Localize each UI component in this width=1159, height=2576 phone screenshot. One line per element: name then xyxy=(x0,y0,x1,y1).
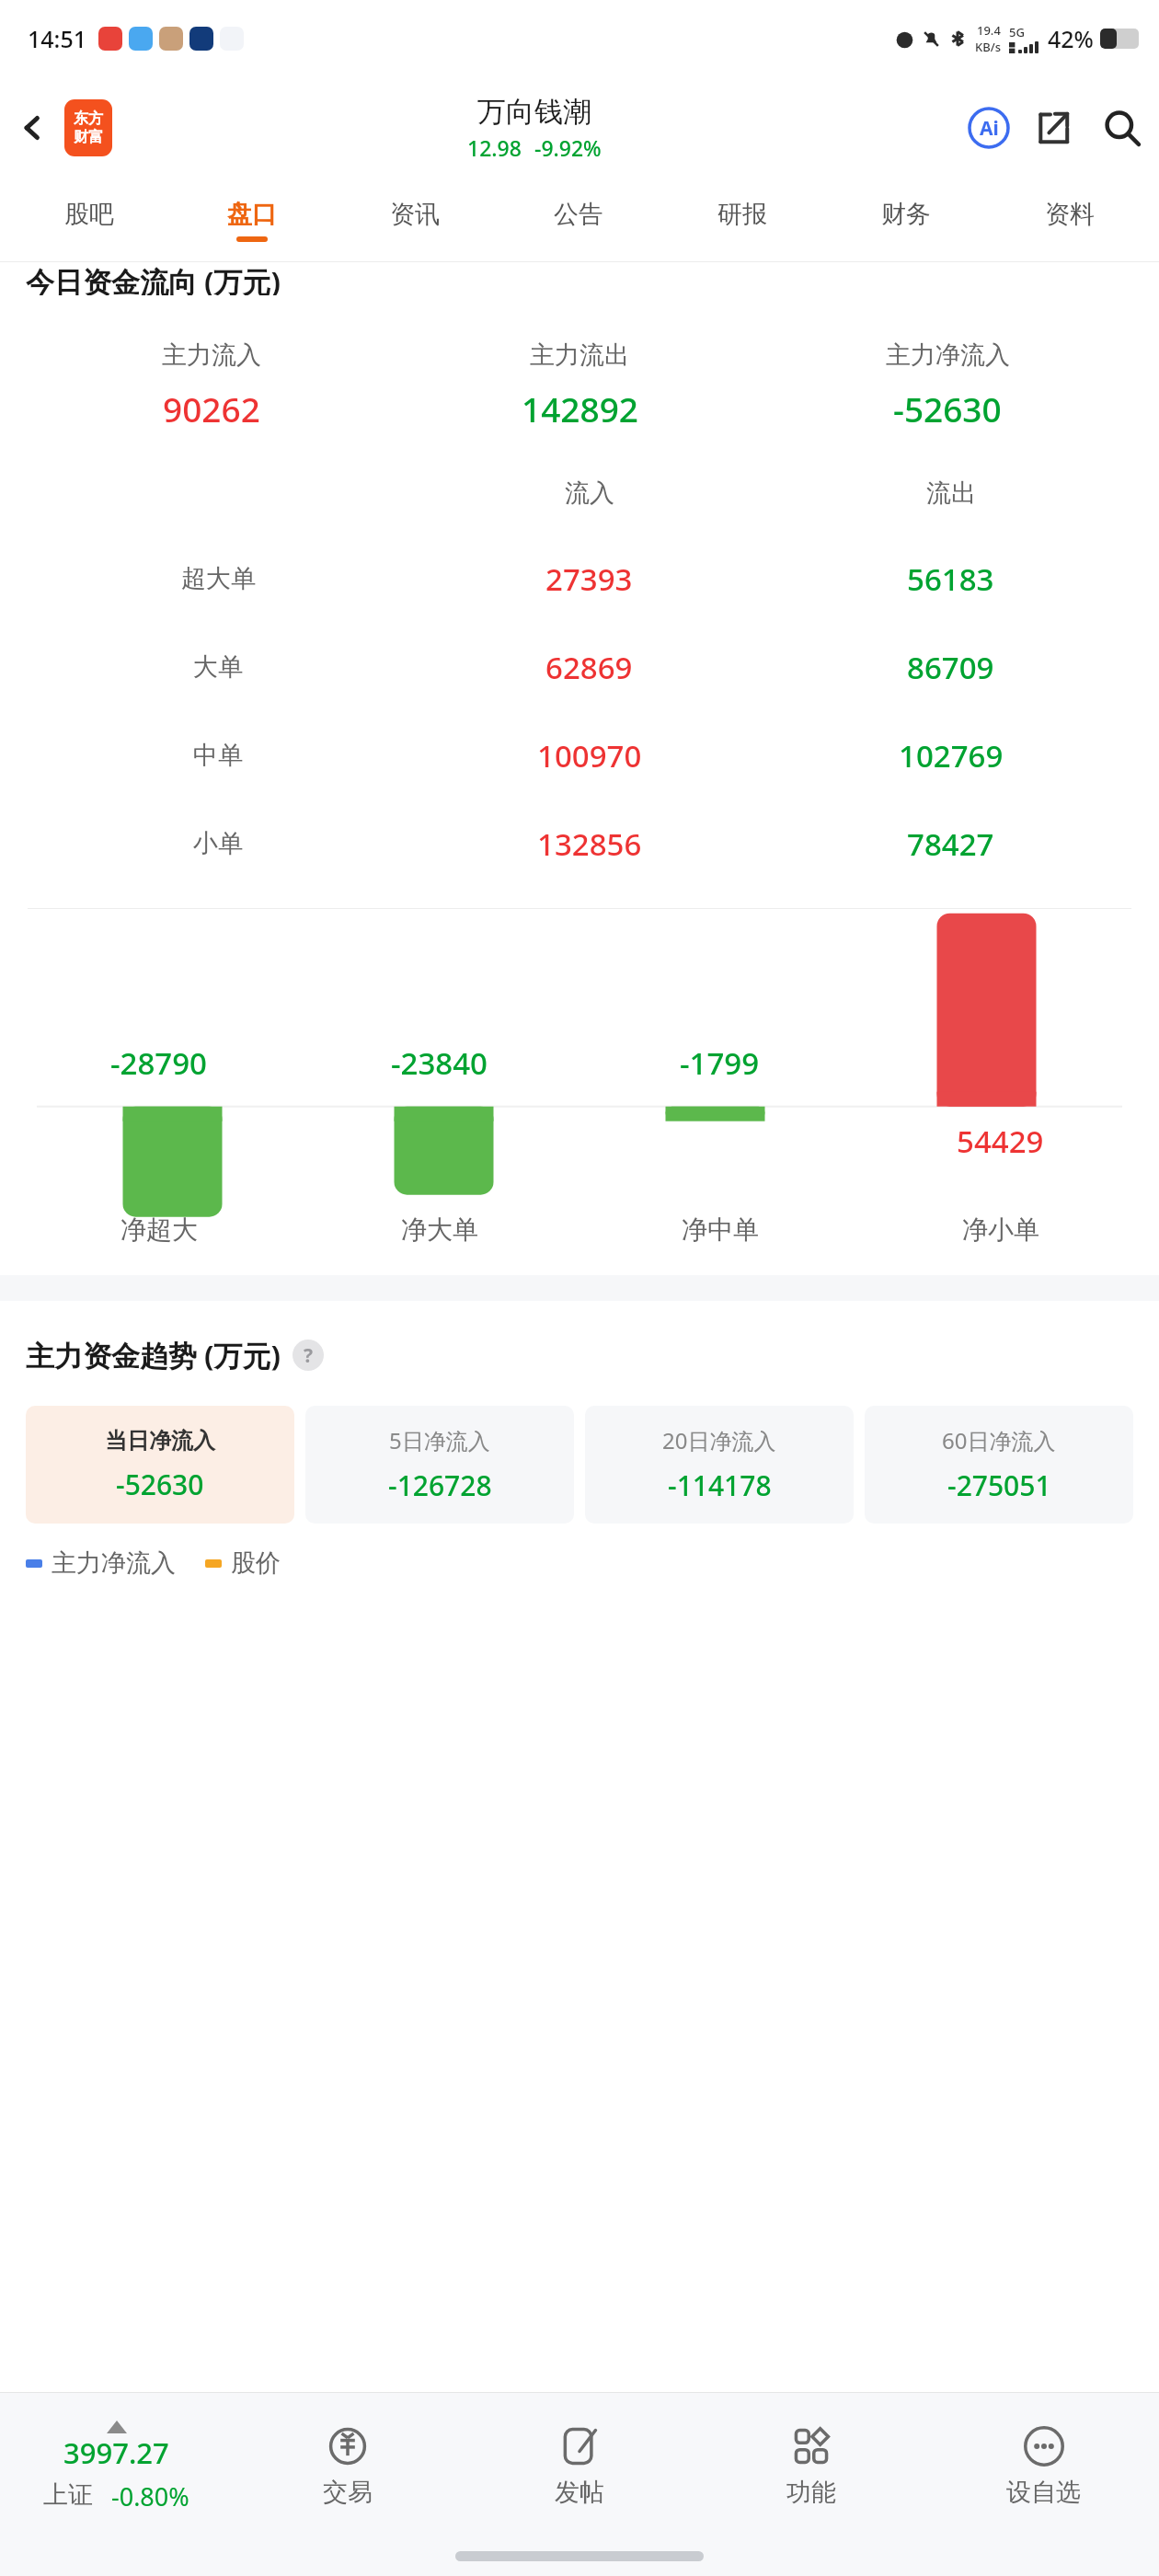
staticText: 研报 xyxy=(717,199,767,230)
button[interactable]: East Money xyxy=(64,99,112,156)
staticText: 超大单 xyxy=(181,563,256,594)
staticText: 27393 xyxy=(545,558,633,600)
staticText: 54429 xyxy=(957,1121,1044,1162)
button[interactable]: 超大单 xyxy=(28,535,1131,623)
staticText: 设自选 xyxy=(1006,2477,1081,2508)
staticText: 主力流入 xyxy=(162,339,261,371)
button[interactable]: 公告 xyxy=(497,178,660,261)
staticText: 流入 xyxy=(565,477,614,509)
staticText: -52630 xyxy=(893,385,1002,431)
staticText: 102769 xyxy=(899,735,1004,776)
button[interactable]: Help xyxy=(293,1340,324,1371)
staticText: -126728 xyxy=(388,1466,492,1504)
staticText: 42% xyxy=(1048,23,1094,54)
staticText: 主力资金趋势 (万元) xyxy=(26,1336,281,1374)
button[interactable]: 5日净流入 xyxy=(305,1406,574,1524)
staticText: 主力流出 xyxy=(530,339,629,371)
staticText: 大单 xyxy=(193,651,243,683)
staticText: 142892 xyxy=(522,385,638,431)
staticText: 3997.27 xyxy=(63,2433,169,2472)
staticText: 功能 xyxy=(786,2477,836,2508)
staticText: -52630 xyxy=(116,1466,204,1503)
button[interactable]: Share xyxy=(1021,96,1085,160)
staticText: 净小单 xyxy=(962,1213,1039,1246)
staticText: -1799 xyxy=(680,1042,760,1084)
button[interactable]: 设自选 xyxy=(927,2393,1159,2540)
staticText: 净大单 xyxy=(401,1213,478,1246)
button[interactable]: Back xyxy=(0,77,64,178)
staticText: 5G xyxy=(1009,24,1025,40)
button[interactable]: 研报 xyxy=(660,178,824,261)
staticText: 中单 xyxy=(193,740,243,771)
staticText: 股吧 xyxy=(64,199,114,230)
staticText: 60日净流入 xyxy=(942,1425,1056,1455)
button[interactable]: Search xyxy=(1085,91,1159,165)
button[interactable]: 盘口 xyxy=(170,178,333,261)
button[interactable]: 20日净流入 xyxy=(585,1406,854,1524)
staticText: -114178 xyxy=(668,1466,772,1504)
staticText: KB/s xyxy=(975,39,1002,55)
button[interactable]: 股吧 xyxy=(7,178,170,261)
staticText: 当日净流入 xyxy=(105,1427,215,1455)
staticText: 今日资金流向 (万元) xyxy=(26,262,281,295)
staticText: -28790 xyxy=(110,1042,207,1084)
button[interactable]: 资讯 xyxy=(333,178,497,261)
button[interactable]: 大单 xyxy=(28,623,1131,711)
button[interactable]: 3997.27 xyxy=(0,2393,232,2540)
staticText: 12.98 xyxy=(467,133,522,162)
staticText: -0.80% xyxy=(111,2479,189,2513)
staticText: 流出 xyxy=(926,477,976,509)
staticText: 公告 xyxy=(554,199,603,230)
button[interactable]: 交易 xyxy=(232,2393,464,2540)
staticText: 56183 xyxy=(907,558,994,600)
staticText: 14:51 xyxy=(28,23,87,54)
staticText: -23840 xyxy=(391,1042,488,1084)
staticText: 132856 xyxy=(537,823,642,865)
staticText: 90262 xyxy=(163,385,260,431)
staticText: 财富 xyxy=(74,128,103,146)
button[interactable]: 发帖 xyxy=(464,2393,695,2540)
staticText: 盘口 xyxy=(227,199,277,230)
button[interactable]: 主力流入 xyxy=(28,325,1131,446)
staticText: 万向钱潮 xyxy=(477,94,591,130)
staticText: 上证 xyxy=(43,2479,93,2511)
staticText: 20日净流入 xyxy=(662,1425,776,1455)
staticText: 19.4 xyxy=(977,22,1001,39)
staticText: 100970 xyxy=(537,735,642,776)
staticText: 主力净流入 xyxy=(52,1547,176,1579)
staticText: 主力净流入 xyxy=(886,339,1010,371)
staticText: 发帖 xyxy=(555,2477,604,2508)
staticText: 资讯 xyxy=(390,199,440,230)
staticText: -275051 xyxy=(947,1466,1051,1504)
staticText: 交易 xyxy=(323,2477,373,2508)
button[interactable]: 60日净流入 xyxy=(865,1406,1133,1524)
staticText: ? xyxy=(304,1342,314,1369)
button[interactable]: 中单 xyxy=(28,711,1131,799)
staticText: 62869 xyxy=(545,647,633,688)
button[interactable]: 小单 xyxy=(28,799,1131,888)
staticText: 财务 xyxy=(881,199,931,230)
staticText: 资料 xyxy=(1045,199,1095,230)
staticText: 小单 xyxy=(193,828,243,859)
staticText: 净超大 xyxy=(120,1213,198,1246)
button[interactable]: 资料 xyxy=(988,178,1152,261)
button[interactable]: 功能 xyxy=(695,2393,927,2540)
staticText: Ai xyxy=(980,115,999,142)
staticText: 东方 xyxy=(74,109,103,128)
button[interactable]: 当日净流入 xyxy=(26,1406,294,1524)
staticText: -9.92% xyxy=(534,133,602,162)
staticText: 78427 xyxy=(907,823,994,865)
staticText: 股价 xyxy=(231,1547,281,1579)
staticText: 86709 xyxy=(907,647,994,688)
button[interactable]: AI xyxy=(957,96,1021,160)
staticText: 净中单 xyxy=(682,1213,759,1246)
staticText: 5日净流入 xyxy=(389,1425,490,1455)
button[interactable]: 财务 xyxy=(824,178,988,261)
